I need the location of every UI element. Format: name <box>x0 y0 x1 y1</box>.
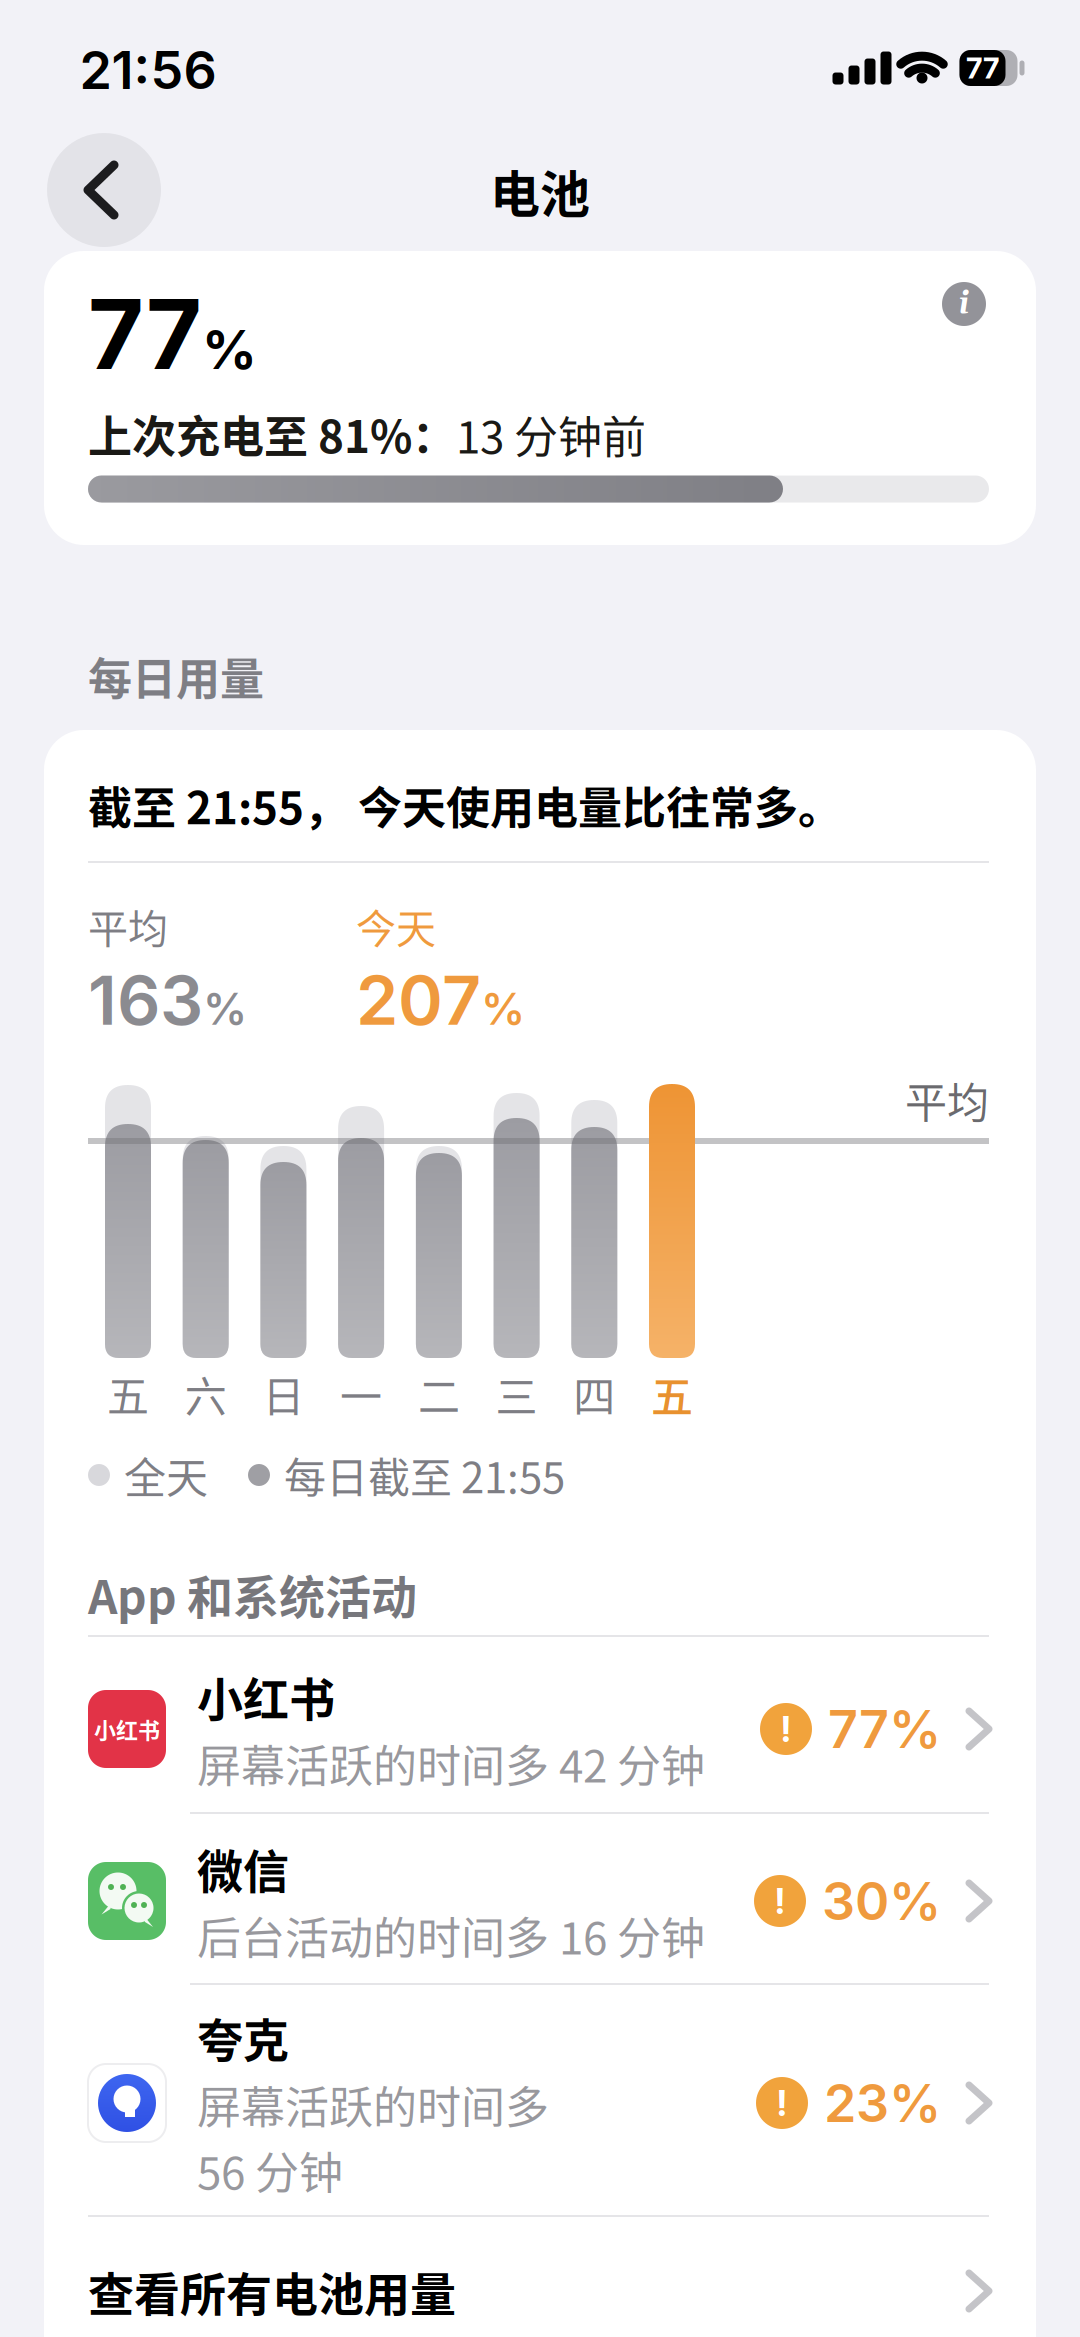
button[interactable]: Back <box>47 133 161 247</box>
staticText: 四 <box>573 1364 615 1424</box>
staticText: 56 分钟 <box>197 2138 343 2202</box>
staticText: 23% <box>824 2071 941 2134</box>
staticText: App 和系统活动 <box>88 1561 417 1627</box>
staticText: 77% <box>88 277 257 391</box>
staticText: 平均 <box>88 897 168 955</box>
staticText: 五 <box>107 1364 149 1424</box>
staticText: i <box>958 284 970 324</box>
staticText: ! <box>777 2081 787 2125</box>
staticText: 小红书 <box>94 1713 160 1745</box>
button[interactable]: 小红书 <box>88 1663 989 1795</box>
staticText: 二 <box>418 1364 460 1424</box>
staticText: ! <box>775 1879 785 1923</box>
button[interactable]: 夸克 <box>88 2004 989 2202</box>
staticText: 夸克 <box>197 2004 289 2071</box>
staticText: 207% <box>356 960 525 1040</box>
staticText: 上次充电至 81%：13 分钟前 <box>88 403 646 465</box>
staticText: 三 <box>496 1364 538 1424</box>
staticText: 77% <box>828 1697 941 1760</box>
staticText: 163% <box>88 960 247 1040</box>
staticText: 电池 <box>490 155 590 227</box>
staticText: 后台活动的时间多 16 分钟 <box>197 1903 705 1967</box>
button[interactable]: Info <box>942 282 986 326</box>
staticText: 截至 21:55， 今天使用电量比往常多。 <box>88 773 842 837</box>
staticText: 屏幕活跃的时间多 42 分钟 <box>197 1731 705 1795</box>
staticText: 日 <box>262 1364 304 1424</box>
staticText: 小红书 <box>197 1663 335 1729</box>
staticText: 平均 <box>905 1070 989 1130</box>
staticText: 屏幕活跃的时间多 <box>197 2073 549 2136</box>
staticText: 一 <box>340 1364 382 1424</box>
button[interactable]: 微信 <box>88 1835 989 1967</box>
staticText: 查看所有电池用量 <box>88 2258 456 2324</box>
staticText: 每日用量 <box>88 644 264 708</box>
staticText: 微信 <box>197 1835 289 1901</box>
staticText: 77 <box>966 50 999 86</box>
button[interactable]: 查看所有电池用量 <box>88 2258 989 2324</box>
staticText: ! <box>781 1707 791 1751</box>
staticText: 五 <box>651 1364 693 1424</box>
staticText: 21:56 <box>79 38 216 101</box>
staticText: 每日截至 21:55 <box>284 1445 565 1505</box>
staticText: 六 <box>185 1364 227 1424</box>
staticText: 全天 <box>124 1445 208 1505</box>
staticText: 30% <box>822 1869 941 1932</box>
staticText: 今天 <box>356 897 436 955</box>
